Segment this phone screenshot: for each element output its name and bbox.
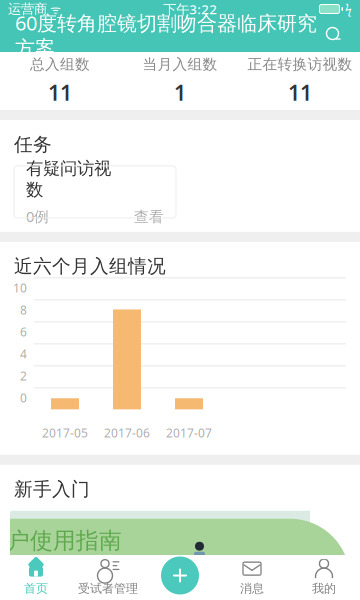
staticText: 1 (174, 78, 186, 107)
staticText: 有疑问访视数 (26, 158, 111, 200)
staticText: 立即查看 (0, 567, 45, 583)
staticText: 近六个月入组情况 (14, 255, 166, 278)
staticText: 正在转换访视数 (247, 55, 352, 73)
staticText: 10 (13, 280, 27, 296)
button[interactable]: 首页 (0, 555, 72, 600)
staticText: 下午3:22 (163, 0, 217, 18)
button[interactable]: 新增 (157, 552, 203, 598)
staticText: 首页 (24, 581, 48, 596)
staticText: 查看 (134, 208, 164, 226)
button[interactable]: 消息 (216, 555, 288, 600)
staticText: 总入组数 (30, 55, 90, 73)
staticText: 我的 (312, 581, 336, 596)
button[interactable]: 有疑问访视数 (14, 166, 176, 218)
button[interactable]: 我的 (288, 555, 360, 600)
staticText: 当月入组数 (142, 55, 217, 73)
staticText: 2017-07 (166, 425, 212, 441)
staticText: 4 (20, 346, 27, 362)
staticText: 2017-05 (42, 425, 88, 441)
staticText: 消息 (240, 581, 264, 596)
staticText: 受试者管理 (78, 581, 138, 596)
button[interactable]: 搜索 (323, 24, 345, 46)
staticText: 运营商 (8, 1, 47, 17)
staticText: ϟ (345, 1, 352, 17)
staticText: 60度转角腔镜切割吻合器临床研究方案 (15, 9, 317, 60)
staticText: 6 (20, 324, 27, 340)
staticText: 任务 (14, 133, 52, 156)
staticText: 11 (288, 78, 312, 107)
staticText: 新手入门 (14, 478, 90, 501)
staticText: 0 (20, 390, 27, 406)
staticText: 8 (20, 302, 27, 318)
staticText: 0例 (26, 206, 49, 226)
staticText: 11 (48, 78, 72, 107)
button[interactable]: 受试者管理 (72, 555, 144, 600)
staticText: ᯤ (47, 1, 61, 17)
staticText: 用户使用指南 (0, 527, 122, 554)
staticText: 2017-06 (104, 425, 150, 441)
staticText: 2 (20, 368, 27, 384)
button[interactable]: 用户使用指南 (10, 511, 350, 599)
